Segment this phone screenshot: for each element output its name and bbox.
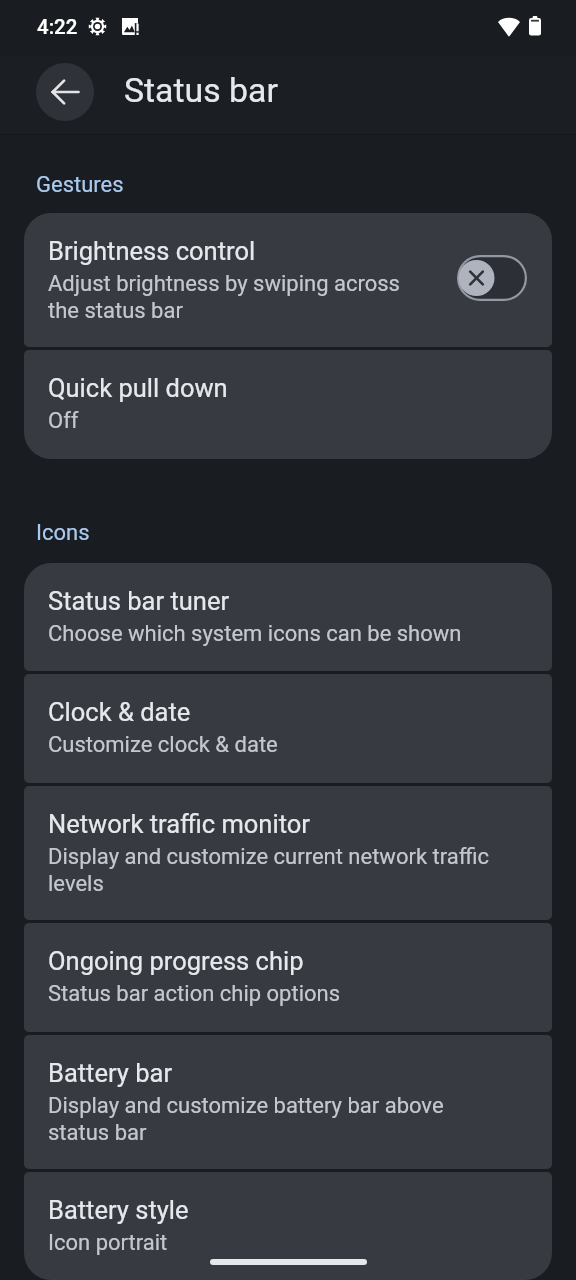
staticText: Battery style — [48, 1195, 189, 1225]
staticText: Adjust brightness by swiping across the … — [48, 270, 400, 324]
staticText: Icons — [36, 519, 90, 545]
button[interactable]: Battery bar — [24, 1035, 552, 1169]
staticText: Status bar tuner — [48, 586, 230, 616]
button[interactable]: Clock & date — [24, 674, 552, 783]
button[interactable]: Ongoing progress chip — [24, 923, 552, 1032]
button[interactable]: Brightness control — [24, 213, 552, 347]
staticText: Choose which system icons can be shown — [48, 620, 462, 647]
staticText: Quick pull down — [48, 373, 228, 403]
staticText: Status bar — [124, 70, 278, 110]
button[interactable]: Status bar tuner — [24, 563, 552, 671]
button[interactable]: Brightness control toggle, off — [457, 255, 527, 301]
staticText: Icon portrait — [48, 1229, 168, 1256]
staticText: Status bar action chip options — [48, 980, 341, 1007]
button[interactable]: Battery style — [24, 1172, 552, 1280]
staticText: Ongoing progress chip — [48, 946, 304, 976]
staticText: Brightness control — [48, 236, 256, 266]
staticText: Network traffic monitor — [48, 809, 310, 839]
staticText: Off — [48, 407, 79, 434]
staticText: Battery bar — [48, 1058, 173, 1088]
staticText: Clock & date — [48, 697, 191, 727]
button[interactable]: Quick pull down — [24, 350, 552, 459]
button[interactable]: Network traffic monitor — [24, 786, 552, 920]
staticText: Display and customize battery bar above … — [48, 1092, 444, 1146]
staticText: Gestures — [36, 171, 124, 197]
button[interactable]: Back — [36, 63, 94, 121]
staticText: Display and customize current network tr… — [48, 843, 489, 897]
staticText: Customize clock & date — [48, 731, 278, 758]
staticText: 4:22 — [37, 15, 78, 39]
